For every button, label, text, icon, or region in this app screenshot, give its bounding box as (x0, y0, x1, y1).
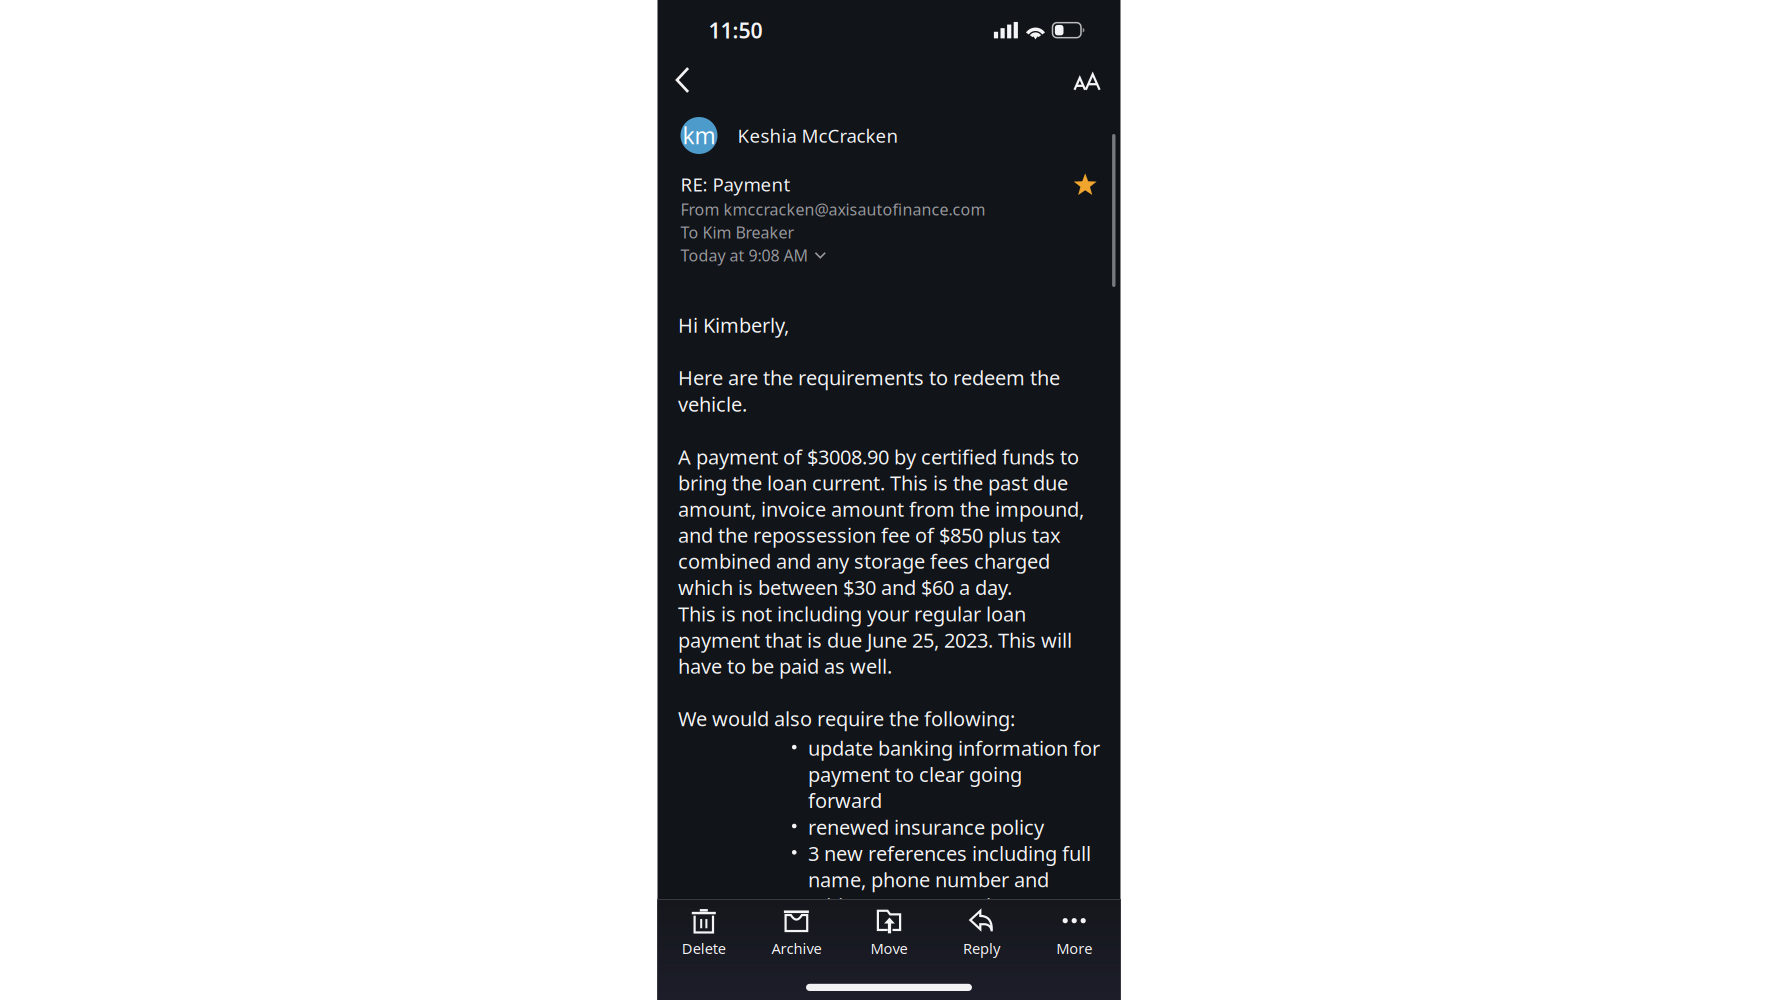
staticText: We would also require the following: (678, 705, 1015, 732)
staticText: From kmccracken@axisautofinance.com (680, 199, 985, 220)
staticText: Delete (682, 939, 726, 958)
staticText: Keshia McCracken (737, 123, 898, 148)
button[interactable]: More (1028, 908, 1120, 958)
button[interactable]: Today at 9:08 AM (680, 247, 1097, 264)
staticText: Move (870, 939, 907, 958)
staticText: 3 new references including full name, ph… (808, 840, 1091, 919)
staticText: Archive (771, 939, 821, 958)
staticText: Hi Kimberly, (678, 312, 789, 338)
button[interactable]: Delete (657, 908, 750, 958)
staticText: 11:50 (708, 16, 762, 44)
button[interactable]: Archive (750, 908, 843, 958)
button[interactable]: Back (657, 55, 706, 99)
staticText: Here are the requirements to redeem the … (678, 364, 1060, 417)
staticText: A payment of $3008.90 by certified funds… (678, 443, 1084, 600)
staticText: This is not including your regular loan … (678, 600, 1072, 679)
staticText: To Kim Breaker (680, 222, 794, 243)
button[interactable]: Reply (935, 908, 1028, 958)
staticText: Today at 9:08 AM (680, 245, 808, 266)
staticText: More (1056, 939, 1092, 958)
button[interactable]: Move (843, 908, 935, 958)
staticText: RE: Payment (680, 172, 790, 197)
button[interactable]: Text size options (1058, 56, 1120, 98)
staticText: update banking information for payment t… (808, 735, 1100, 814)
staticText: km (682, 120, 715, 150)
staticText: renewed insurance policy (808, 814, 1044, 840)
staticText: Reply (963, 939, 1000, 958)
